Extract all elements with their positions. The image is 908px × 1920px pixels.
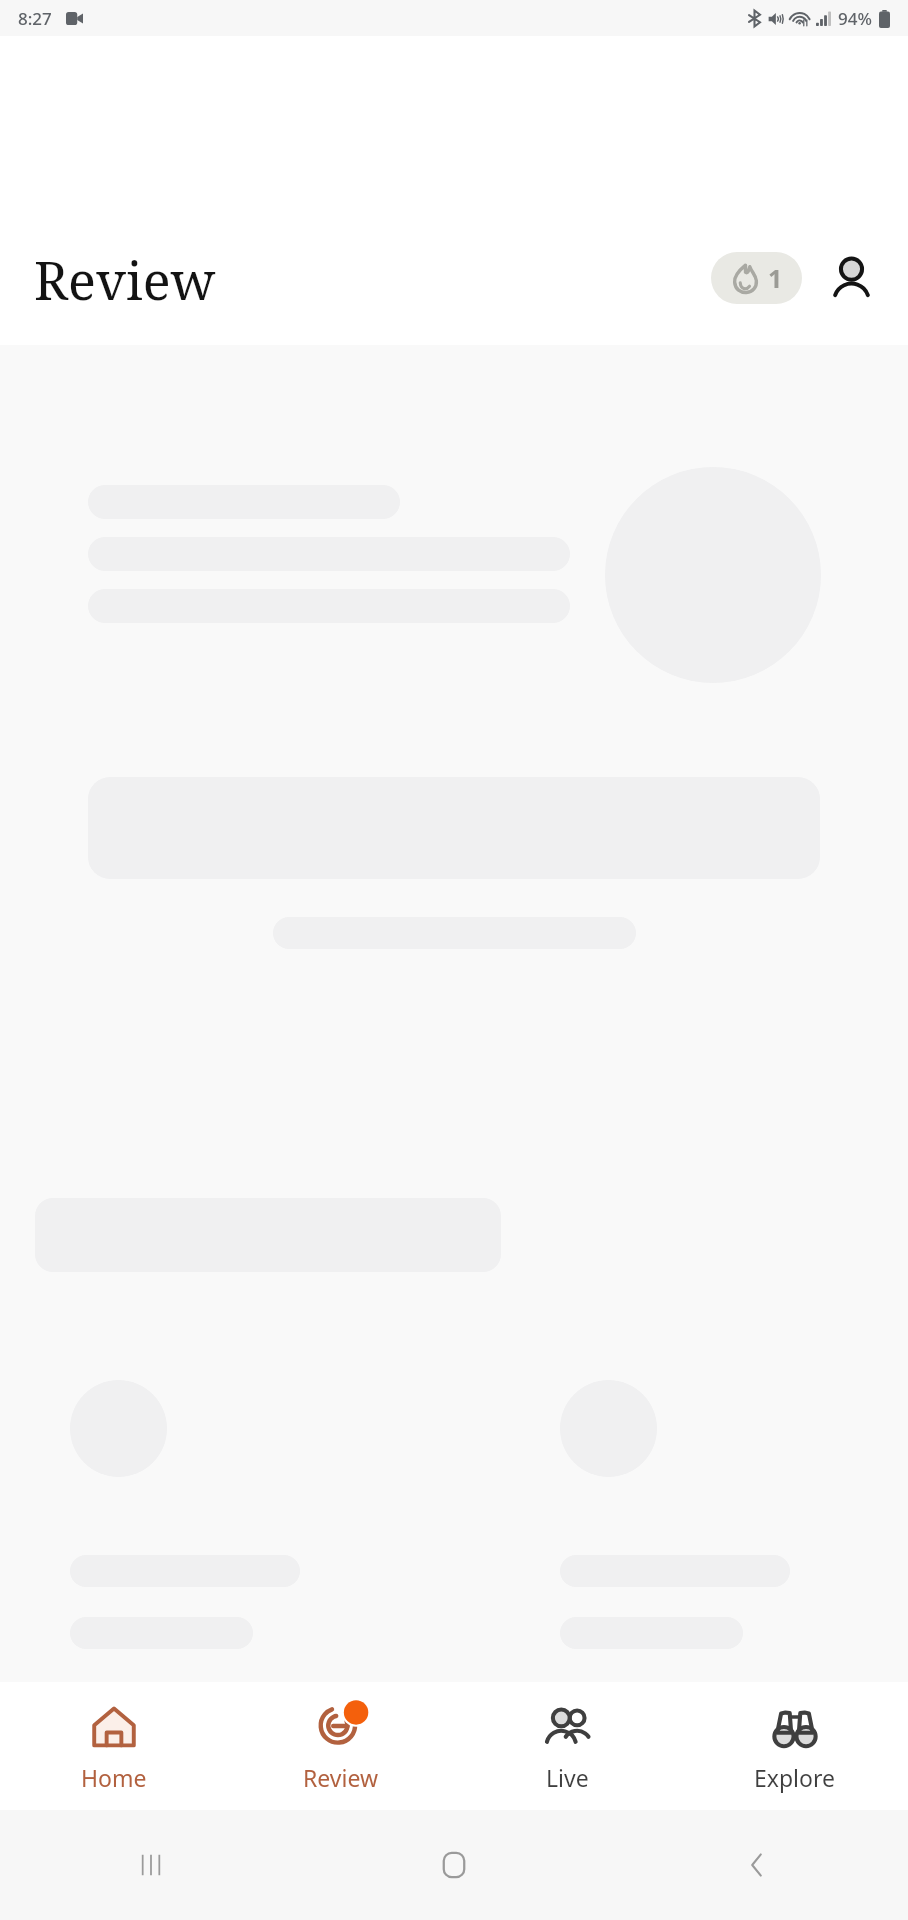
staticText: 94% xyxy=(838,7,872,30)
staticText: Home xyxy=(81,1762,147,1793)
button[interactable]: Recent apps xyxy=(0,1810,302,1920)
button[interactable]: 1 xyxy=(711,252,802,304)
staticText: Live xyxy=(546,1762,589,1793)
button[interactable]: Review xyxy=(227,1682,454,1810)
staticText: 1 xyxy=(768,261,783,295)
button[interactable]: Home xyxy=(302,1810,605,1920)
staticText: Explore xyxy=(754,1762,835,1793)
button[interactable]: Home xyxy=(0,1682,227,1810)
staticText: Review xyxy=(34,244,216,315)
button[interactable]: Back xyxy=(605,1810,908,1920)
button[interactable]: Live xyxy=(454,1682,681,1810)
button[interactable]: Profile xyxy=(824,251,878,305)
button[interactable]: Explore xyxy=(681,1682,908,1810)
staticText: Review xyxy=(303,1762,379,1793)
staticText: 8:27 xyxy=(18,7,52,30)
